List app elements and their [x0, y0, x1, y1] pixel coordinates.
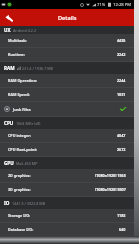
- staticText: Database I/O:: [8, 227, 34, 232]
- button[interactable]: Multitask:: [0, 34, 134, 47]
- staticText: Mali-450 MP: [16, 161, 38, 166]
- staticText: [1080x1920] 5507: [95, 187, 126, 192]
- staticText: RAM Operation:: [8, 78, 38, 83]
- staticText: [1080x1920] 1565: [95, 173, 126, 178]
- staticText: IO: [4, 200, 10, 206]
- button[interactable]: RAM Operation:: [0, 74, 134, 87]
- staticText: CPU float-point:: [8, 147, 38, 152]
- staticText: 1664 MHz (x8): [16, 121, 41, 126]
- button[interactable]: Back: [0, 9, 17, 26]
- staticText: 640: [119, 227, 126, 232]
- staticText: 1183: [117, 213, 126, 218]
- button[interactable]: 3D graphics:: [0, 183, 134, 196]
- staticText: CPU: [4, 120, 14, 126]
- staticText: Multitask:: [8, 38, 27, 43]
- staticText: 231.4 / 1936.7 MB: [22, 66, 53, 71]
- staticText: 4047: [117, 133, 126, 138]
- staticText: Runtime:: [8, 52, 25, 57]
- button[interactable]: CPU integer:: [0, 129, 134, 142]
- button[interactable]: 2D graphics:: [0, 169, 134, 182]
- staticText: Android 4.2.2: [13, 28, 37, 33]
- staticText: GPU: [4, 160, 14, 166]
- staticText: 12:28 PM: [113, 2, 132, 8]
- button[interactable]: Runtime:: [0, 48, 134, 61]
- staticText: RAM: [4, 65, 15, 71]
- staticText: 1441.5 / 3022.8 MB: [12, 201, 46, 206]
- staticText: 2672: [117, 147, 126, 152]
- button[interactable]: RAM Speed:: [0, 88, 134, 101]
- button[interactable]: Junk Files: [0, 102, 134, 116]
- staticText: 71%: [97, 2, 106, 8]
- staticText: 2242: [117, 52, 126, 57]
- button[interactable]: Database I/O:: [0, 223, 134, 236]
- staticText: Storage I/O:: [8, 213, 31, 218]
- staticText: 4435: [117, 38, 126, 43]
- staticText: Details: [58, 14, 77, 22]
- staticText: UX: [4, 27, 11, 33]
- button[interactable]: Storage I/O:: [0, 209, 134, 222]
- button[interactable]: CPU float-point:: [0, 143, 134, 156]
- staticText: RAM Speed:: [8, 92, 30, 97]
- staticText: 2244: [117, 78, 126, 83]
- staticText: CPU integer:: [8, 133, 31, 138]
- staticText: Junk Files: [13, 107, 31, 112]
- staticText: 3D graphics:: [8, 187, 31, 192]
- staticText: 1031: [117, 92, 126, 97]
- staticText: 2D graphics:: [8, 173, 31, 178]
